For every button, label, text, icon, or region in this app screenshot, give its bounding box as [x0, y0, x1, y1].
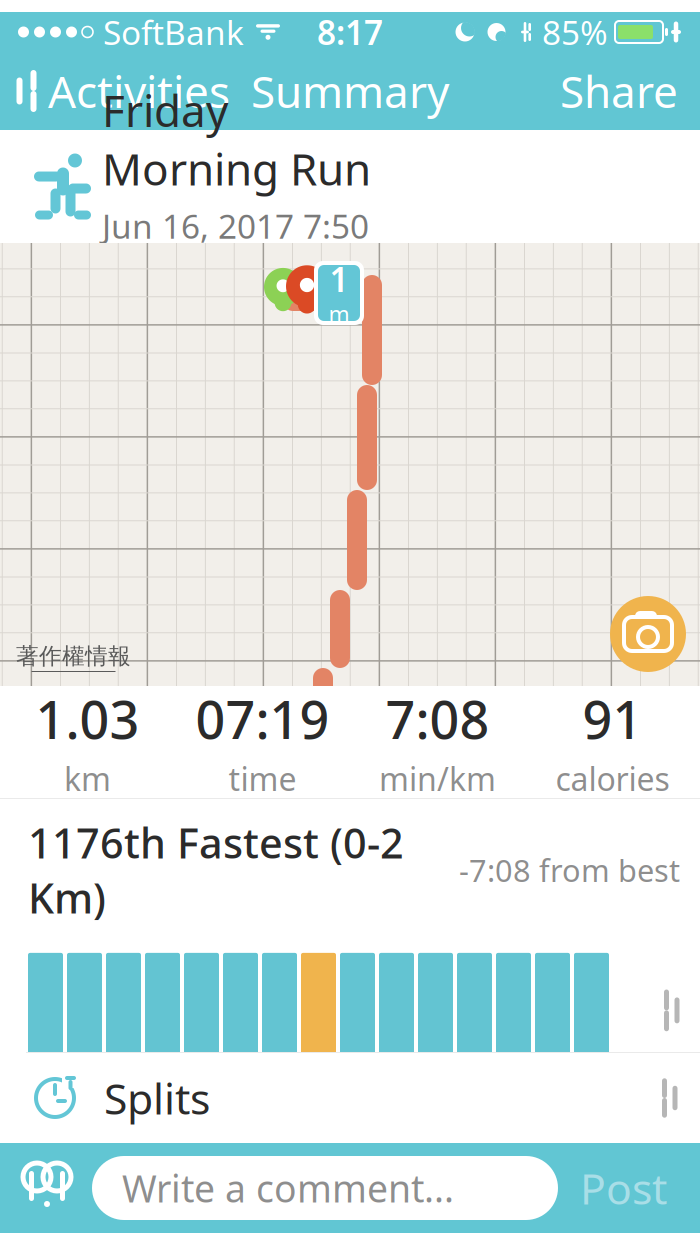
staticText: Activities [48, 62, 230, 120]
staticText: 1.03 [35, 684, 139, 753]
staticText: -7:08 from best [459, 850, 680, 890]
staticText: m [328, 299, 349, 329]
staticText: Post [580, 1160, 667, 1216]
staticText: Write a comment... [122, 1163, 454, 1213]
button[interactable]: Post [568, 1150, 679, 1226]
button[interactable]: Write a comment... [92, 1156, 558, 1220]
button[interactable]: Add photo [610, 596, 686, 672]
staticText: 85% [542, 10, 608, 54]
staticText: time [228, 757, 296, 800]
staticText: Jun 16, 2017 7:50 AM [102, 204, 369, 292]
button[interactable]: Like [0, 1154, 74, 1222]
button[interactable]: Share [560, 52, 700, 130]
staticText: Friday Morning Run [102, 81, 371, 198]
staticText: 07:19 [195, 684, 329, 753]
staticText: 1176th Fastest (0-2 Km) [28, 815, 404, 925]
staticText: Summary [251, 62, 449, 120]
staticText: SoftBank [103, 10, 244, 54]
staticText: Share [560, 62, 678, 120]
button[interactable]: Splits [0, 1052, 700, 1143]
staticText: 7:08 [385, 684, 489, 753]
staticText: km [64, 757, 111, 800]
staticText: 著作權情報 [16, 642, 131, 670]
staticText: Splits [104, 1070, 210, 1126]
staticText: min/km [379, 757, 496, 800]
staticText: 1 [329, 257, 348, 301]
staticText: 8:17 [317, 10, 383, 54]
staticText: 91 [582, 684, 642, 753]
button[interactable]: 1176th Fastest (0-2 Km) [0, 799, 700, 1052]
staticText: calories [555, 757, 669, 800]
button[interactable]: Activities [0, 52, 230, 130]
